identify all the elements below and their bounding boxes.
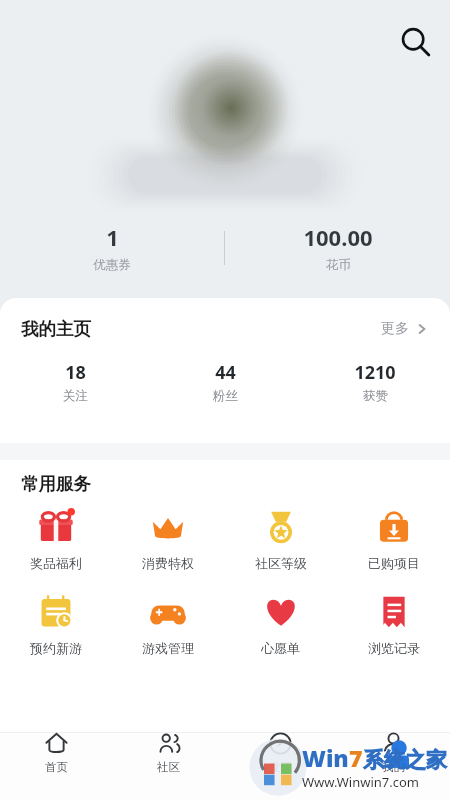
button[interactable]: 1210 [300,360,450,404]
staticText: 7 [349,742,363,773]
button[interactable]: 社区等级 [224,508,337,571]
staticText: 系统之家 [363,747,447,773]
staticText: 发现 [269,760,292,774]
staticText: 社区等级 [255,555,307,571]
staticText: 游戏管理 [142,640,194,656]
button[interactable]: 社区 [112,732,224,774]
staticText: 44 [215,360,236,385]
button[interactable]: 首页 [0,732,112,774]
staticText: 18 [65,360,86,385]
staticText: 预约新游 [30,640,82,656]
staticText: Win [302,742,349,773]
staticText: 社区 [157,760,180,774]
staticText: Www.Winwin7.com [302,773,419,791]
button[interactable]: 心愿单 [224,593,337,656]
staticText: 心愿单 [261,640,300,656]
staticText: 我的 [382,760,405,774]
button[interactable]: 1 [0,222,224,273]
button[interactable]: 已购项目 [337,508,450,571]
button[interactable]: 我的 [337,732,450,774]
staticText: 粉丝 [213,388,238,404]
staticText: 浏览记录 [368,640,420,656]
button[interactable]: 浏览记录 [337,593,450,656]
staticText: 首页 [45,760,68,774]
staticText: 我的主页 [21,318,91,340]
button[interactable]: 奖品福利 [0,508,112,571]
button[interactable]: 100.00 [225,222,450,273]
button[interactable]: 我的主页 [0,298,450,360]
staticText: 花币 [326,257,351,273]
button[interactable]: 发现 [224,732,337,774]
button[interactable]: 预约新游 [0,593,112,656]
staticText: 100.00 [303,222,373,252]
staticText: 常用服务 [21,473,91,495]
button[interactable]: Search [392,19,438,65]
button[interactable]: 游戏管理 [112,593,224,656]
staticText: 已购项目 [368,555,420,571]
button[interactable]: 消费特权 [112,508,224,571]
button[interactable]: 44 [150,360,300,404]
staticText: 消费特权 [142,555,194,571]
staticText: 更多 [381,320,409,338]
staticText: 1 [106,222,119,252]
staticText: 优惠券 [93,257,131,273]
staticText: 奖品福利 [30,555,82,571]
staticText: 获赞 [363,388,388,404]
button[interactable]: 18 [0,360,150,404]
staticText: 关注 [63,388,88,404]
staticText: 1210 [354,360,396,385]
